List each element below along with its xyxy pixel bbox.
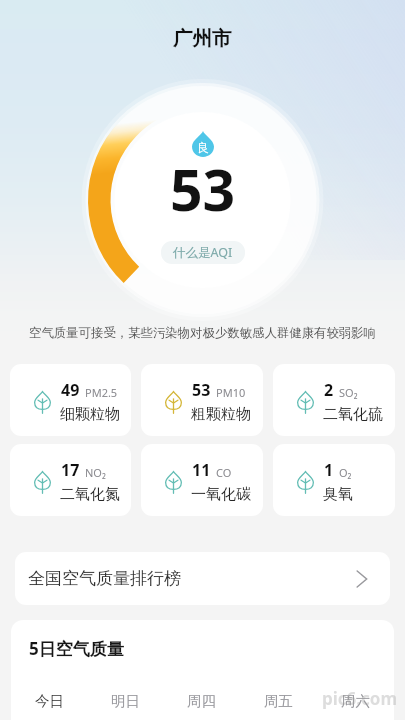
staticText: 良 (197, 140, 209, 155)
staticText: 53 (170, 150, 236, 228)
button[interactable]: 49 (10, 364, 131, 436)
staticText: PM2.5 (85, 385, 118, 400)
staticText: 什么是AQI (173, 244, 233, 261)
staticText: NO₂ (85, 465, 106, 480)
button[interactable]: 11 (141, 444, 263, 516)
staticText: 广州市 (173, 26, 232, 51)
button[interactable]: 2 (273, 364, 395, 436)
staticText: 49 (61, 379, 80, 401)
staticText: 11 (192, 459, 211, 481)
staticText: SO₂ (339, 385, 358, 400)
staticText: 周六 (341, 692, 370, 710)
staticText: 周五 (264, 692, 293, 710)
button[interactable]: 周四 (163, 682, 240, 720)
staticText: PM10 (216, 385, 246, 400)
staticText: 1 (324, 459, 334, 481)
staticText: 明日 (111, 692, 140, 710)
staticText: 一氧化碳 (191, 485, 251, 504)
staticText: pic6.com (322, 687, 398, 710)
button[interactable]: 明日 (87, 682, 163, 720)
staticText: 二氧化硫 (323, 405, 383, 424)
staticText: 二氧化氮 (60, 485, 120, 504)
staticText: O₂ (339, 465, 352, 480)
staticText: 2 (324, 379, 334, 401)
staticText: 臭氧 (323, 485, 353, 504)
staticText: 空气质量可接受，某些污染物对极少数敏感人群健康有较弱影响 (29, 325, 376, 341)
button[interactable]: 今日 (11, 682, 87, 720)
staticText: 5日空气质量 (29, 637, 124, 660)
other: Open national ranking (355, 570, 367, 588)
staticText: 17 (61, 459, 80, 481)
staticText: 细颗粒物 (60, 405, 120, 424)
button[interactable]: 17 (10, 444, 131, 516)
staticText: CO (216, 465, 232, 480)
staticText: 53 (192, 379, 211, 401)
button[interactable]: 周六 (317, 682, 394, 720)
button[interactable]: 全国空气质量排行榜 (15, 552, 390, 605)
staticText: 全国空气质量排行榜 (28, 568, 181, 589)
staticText: 今日 (35, 692, 64, 710)
button[interactable]: 53 (141, 364, 263, 436)
button[interactable]: 周五 (240, 682, 317, 720)
staticText: 周四 (187, 692, 216, 710)
button[interactable]: 1 (273, 444, 395, 516)
staticText: 粗颗粒物 (191, 405, 251, 424)
button[interactable]: 什么是AQI (161, 241, 245, 264)
